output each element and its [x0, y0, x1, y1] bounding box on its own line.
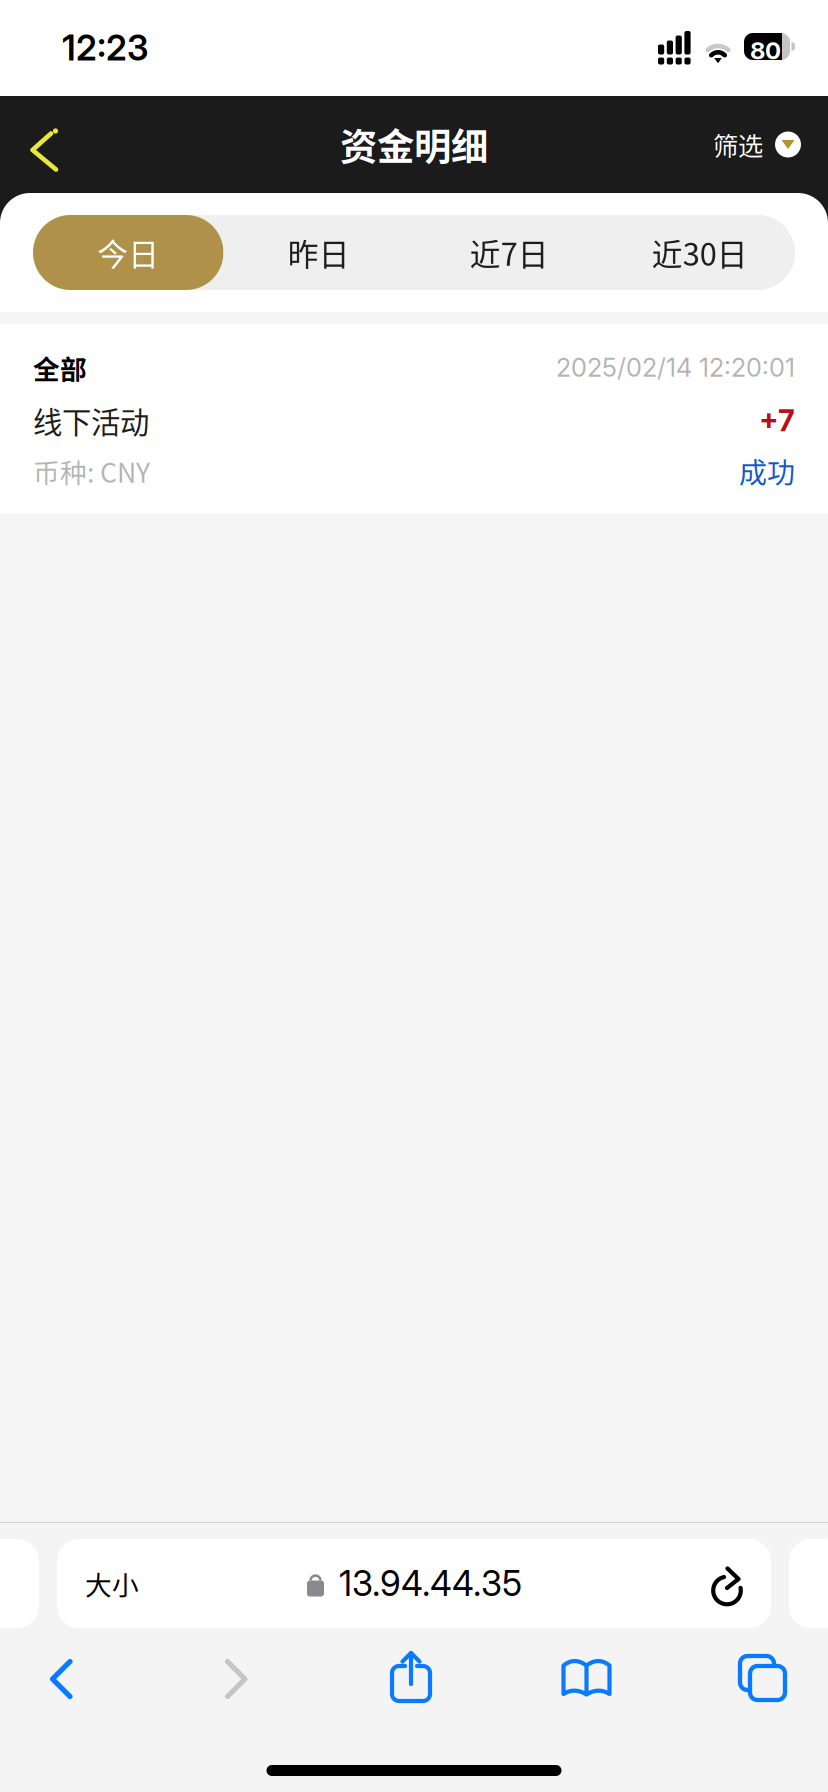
staticText: 80: [750, 36, 781, 65]
staticText: 近7日: [470, 230, 549, 275]
button[interactable]: Back: [30, 1648, 92, 1710]
staticText: 昨日: [288, 230, 350, 275]
staticText: 线下活动: [33, 399, 149, 442]
staticText: 12:23: [62, 27, 149, 69]
staticText: 成功: [739, 451, 795, 491]
button[interactable]: 近7日: [414, 215, 604, 290]
staticText: 全部: [33, 348, 87, 387]
button[interactable]: 大小: [57, 1539, 771, 1628]
staticText: 今日: [97, 230, 159, 275]
button[interactable]: Share: [381, 1648, 441, 1710]
button[interactable]: 近30日: [604, 215, 795, 290]
staticText: 币种: CNY: [33, 452, 150, 490]
button[interactable]: Forward: [207, 1648, 265, 1710]
staticText: 近30日: [652, 230, 748, 275]
button[interactable]: 今日: [33, 215, 223, 290]
button[interactable]: Bookmarks: [556, 1648, 616, 1710]
button[interactable]: Tabs: [732, 1648, 793, 1710]
staticText: 13.94.44.35: [339, 1562, 522, 1604]
staticText: 大小: [85, 1564, 139, 1603]
button[interactable]: 昨日: [223, 215, 414, 290]
button[interactable]: 筛选: [691, 110, 828, 179]
staticText: 筛选: [713, 126, 763, 163]
staticText: 2025/02/14 12:20:01: [556, 352, 795, 383]
staticText: +7: [759, 403, 795, 438]
staticText: 资金明细: [340, 117, 488, 172]
button[interactable]: Back: [0, 96, 83, 193]
